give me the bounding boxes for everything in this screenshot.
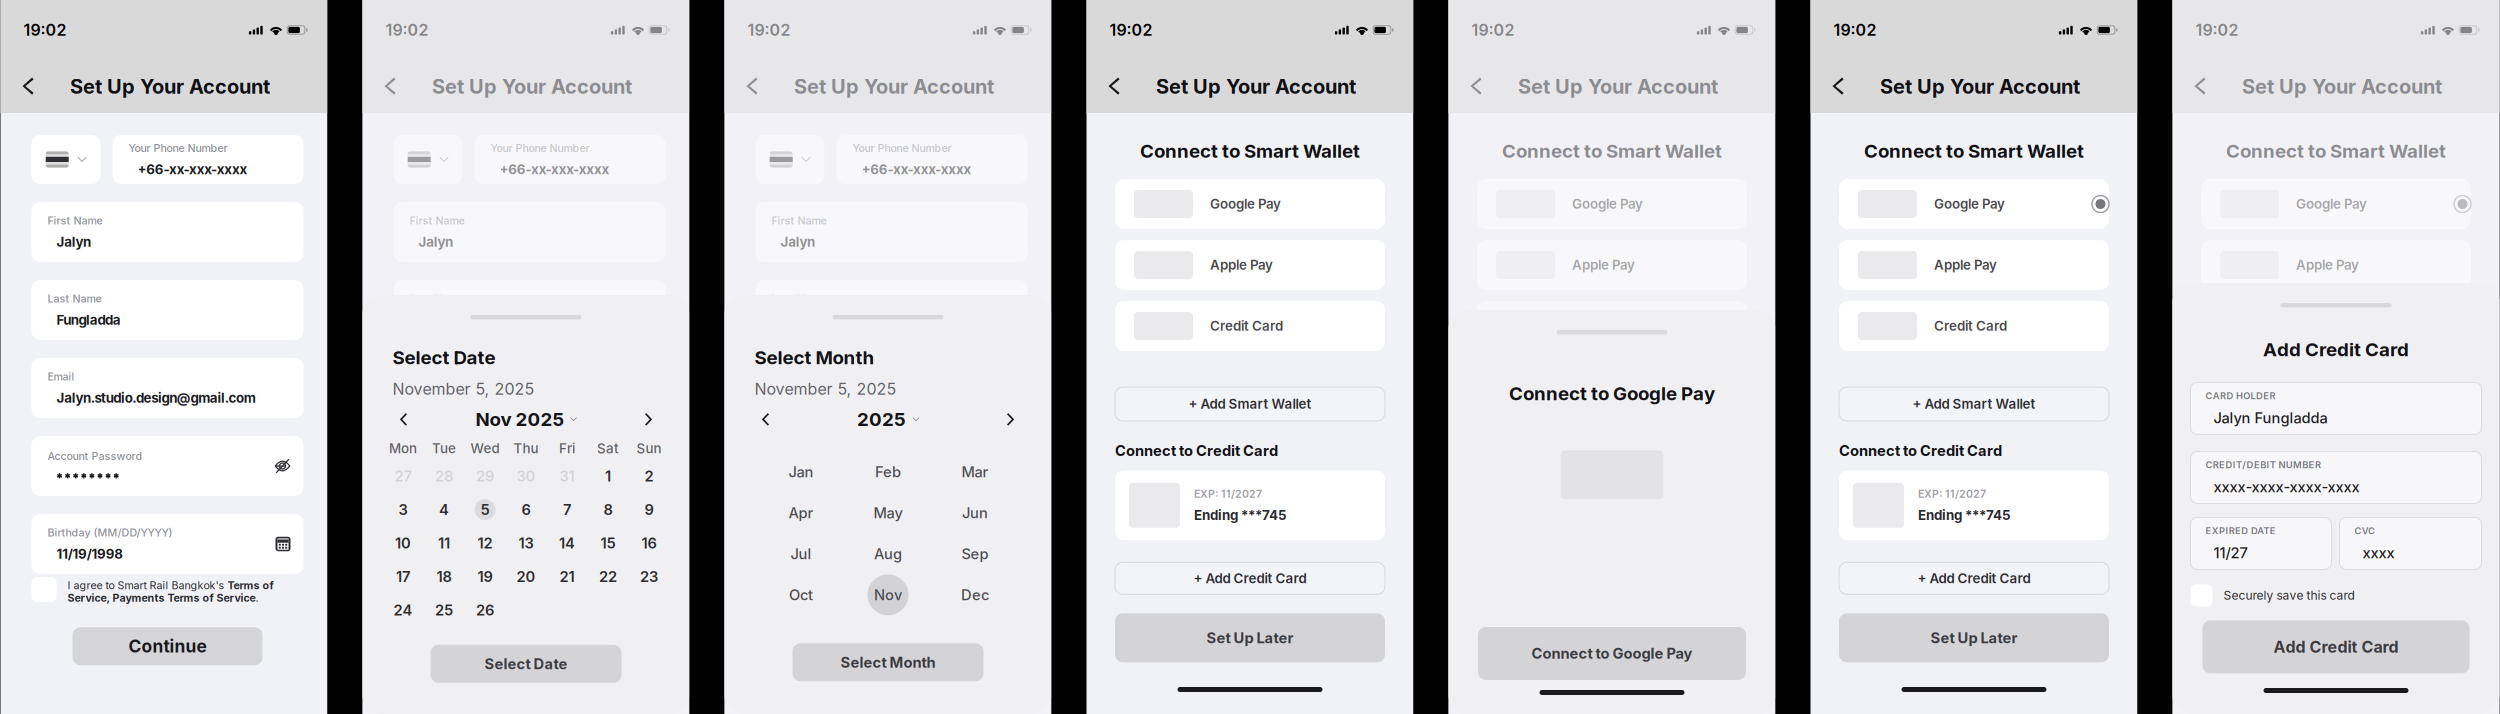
- button[interactable]: Previous: [391, 407, 417, 431]
- button[interactable]: 31: [546, 459, 587, 493]
- button[interactable]: 24: [382, 593, 423, 627]
- button[interactable]: Show password: [274, 458, 290, 474]
- button[interactable]: Back: [6, 63, 50, 109]
- button[interactable]: 23: [628, 560, 669, 593]
- button[interactable]: Apple Pay: [1477, 240, 1747, 290]
- button[interactable]: Set Up Later: [1839, 613, 2109, 662]
- button[interactable]: 10: [382, 526, 423, 560]
- button[interactable]: Back: [2178, 63, 2222, 109]
- button[interactable]: Jan: [757, 451, 844, 492]
- button[interactable]: May: [844, 492, 931, 533]
- button[interactable]: + Add Smart Wallet: [1115, 387, 1385, 421]
- button[interactable]: Dec: [931, 574, 1018, 615]
- button[interactable]: 9: [628, 493, 669, 526]
- button[interactable]: Credit Card: [1477, 301, 1747, 351]
- button[interactable]: Apple Pay: [1115, 240, 1385, 290]
- button[interactable]: Google Pay: [1839, 179, 2109, 229]
- button[interactable]: Apple Pay: [2201, 240, 2471, 290]
- button[interactable]: 5: [464, 493, 505, 526]
- button[interactable]: Select Date: [430, 645, 621, 683]
- button[interactable]: Mar: [931, 451, 1018, 492]
- button[interactable]: Back: [368, 63, 412, 109]
- button[interactable]: 22: [587, 560, 628, 593]
- button[interactable]: 25: [423, 593, 464, 627]
- button[interactable]: Credit Card: [1115, 301, 1385, 351]
- button[interactable]: 29: [464, 459, 505, 493]
- button[interactable]: + Add Credit Card: [1839, 562, 2109, 594]
- button[interactable]: 6: [505, 493, 546, 526]
- button[interactable]: 12: [464, 526, 505, 560]
- button[interactable]: Agree to terms: [393, 577, 418, 602]
- button[interactable]: EXP: 11/2027: [2201, 470, 2471, 540]
- button[interactable]: + Add Smart Wallet: [1839, 387, 2109, 421]
- button[interactable]: Set Up Later: [1477, 613, 1747, 662]
- button[interactable]: Google Pay: [1477, 179, 1747, 229]
- button[interactable]: EXP: 11/2027: [1477, 470, 1747, 540]
- button[interactable]: 15: [587, 526, 628, 560]
- button[interactable]: Aug: [844, 533, 931, 574]
- button[interactable]: Jul: [757, 533, 844, 574]
- button[interactable]: 7: [546, 493, 587, 526]
- button[interactable]: Securely save this card: [2190, 584, 2212, 606]
- button[interactable]: Back: [1816, 63, 1860, 109]
- button[interactable]: Pick a date: [275, 537, 290, 551]
- button[interactable]: Set Up Later: [2201, 613, 2471, 662]
- button[interactable]: Back: [1454, 63, 1498, 109]
- button[interactable]: 8: [587, 493, 628, 526]
- button[interactable]: Back: [1092, 63, 1136, 109]
- button[interactable]: 16: [628, 526, 669, 560]
- button[interactable]: Google Pay: [2201, 179, 2471, 229]
- button[interactable]: 17: [382, 560, 423, 593]
- button[interactable]: Next: [997, 407, 1023, 431]
- button[interactable]: 1: [587, 459, 628, 493]
- button[interactable]: Connect to Google Pay: [1478, 627, 1746, 680]
- button[interactable]: Google Pay: [1115, 179, 1385, 229]
- button[interactable]: Feb: [844, 451, 931, 492]
- button[interactable]: Credit Card: [2201, 301, 2471, 351]
- button[interactable]: Sep: [931, 533, 1018, 574]
- button[interactable]: Jun: [931, 492, 1018, 533]
- button[interactable]: 13: [505, 526, 546, 560]
- button[interactable]: 28: [423, 459, 464, 493]
- button[interactable]: Continue: [72, 627, 262, 665]
- button[interactable]: Continue: [434, 627, 624, 665]
- button[interactable]: Select country code: [393, 135, 462, 184]
- button[interactable]: Apr: [757, 492, 844, 533]
- button[interactable]: Select country code: [31, 135, 100, 184]
- button[interactable]: Previous: [753, 407, 779, 431]
- button[interactable]: EXP: 11/2027: [1115, 470, 1385, 540]
- button[interactable]: EXP: 11/2027: [1839, 470, 2109, 540]
- button[interactable]: Next: [635, 407, 661, 431]
- button[interactable]: 4: [423, 493, 464, 526]
- button[interactable]: Credit Card: [1839, 301, 2109, 351]
- button[interactable]: 2: [628, 459, 669, 493]
- button[interactable]: Continue: [796, 627, 986, 665]
- button[interactable]: + Add Smart Wallet: [1477, 387, 1747, 421]
- button[interactable]: 21: [546, 560, 587, 593]
- button[interactable]: 14: [546, 526, 587, 560]
- button[interactable]: Apple Pay: [1839, 240, 2109, 290]
- button[interactable]: 3: [382, 493, 423, 526]
- button[interactable]: Show password: [636, 458, 652, 474]
- button[interactable]: + Add Credit Card: [2201, 562, 2471, 594]
- button[interactable]: Nov: [844, 574, 931, 615]
- button[interactable]: 11: [423, 526, 464, 560]
- button[interactable]: Back: [730, 63, 774, 109]
- button[interactable]: + Add Smart Wallet: [2201, 387, 2471, 421]
- button[interactable]: 27: [382, 459, 423, 493]
- button[interactable]: Pick a date: [637, 537, 652, 551]
- button[interactable]: 19: [464, 560, 505, 593]
- button[interactable]: 20: [505, 560, 546, 593]
- button[interactable]: Oct: [757, 574, 844, 615]
- button[interactable]: 26: [464, 593, 505, 627]
- button[interactable]: 18: [423, 560, 464, 593]
- button[interactable]: Select Month: [792, 643, 983, 681]
- button[interactable]: Set Up Later: [1115, 613, 1385, 662]
- button[interactable]: + Add Credit Card: [1115, 562, 1385, 594]
- button[interactable]: Select country code: [755, 135, 824, 184]
